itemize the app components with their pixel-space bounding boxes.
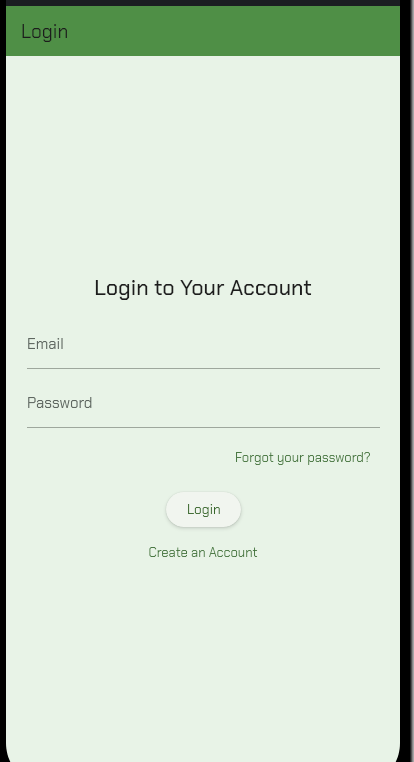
button[interactable]: Create an Account [6,544,400,561]
staticText: Login to Your Account [6,274,400,302]
staticText: Login [187,501,221,519]
staticText: Password [27,393,93,413]
staticText: Email [27,334,64,354]
staticText: Login [21,19,69,44]
button[interactable]: Login [166,492,241,527]
button[interactable]: Forgot your password? [235,449,371,466]
